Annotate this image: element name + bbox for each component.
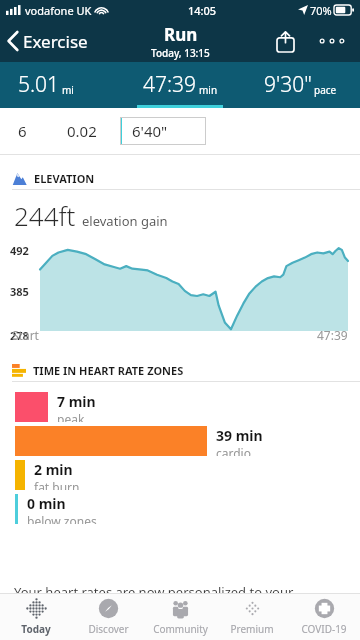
staticText: 6'40" [132, 121, 168, 141]
staticText: below zones [27, 513, 97, 524]
staticText: 5.01 [18, 70, 60, 99]
button[interactable]: Community [144, 594, 216, 640]
staticText: 7 min [57, 392, 96, 411]
staticText: TIME IN HEART RATE ZONES [33, 363, 184, 378]
button[interactable]: Premium [216, 594, 288, 640]
button[interactable]: Exercise [0, 20, 96, 62]
button[interactable]: 9'30" [240, 62, 360, 108]
staticText: Start [12, 327, 39, 343]
button[interactable]: Share [268, 24, 302, 58]
staticText: mi [62, 83, 74, 97]
staticText: Today, 13:15 [151, 46, 210, 60]
staticText: 47:39 [143, 70, 197, 99]
staticText: 0.02 [67, 121, 97, 141]
button[interactable]: 5.01 [0, 62, 120, 108]
staticText: 9'30" [264, 70, 312, 99]
staticText: 39 min [216, 426, 263, 445]
button[interactable]: 6'40" [120, 117, 206, 145]
staticText: Community [153, 622, 208, 636]
staticText: pace [314, 83, 337, 97]
staticText: Today [21, 622, 51, 636]
button[interactable]: More options [312, 21, 352, 61]
staticText: 244ft [14, 198, 76, 233]
staticText: Run [164, 23, 198, 46]
staticText: 70% [310, 3, 332, 18]
staticText: elevation gain [82, 212, 168, 230]
button[interactable]: 7 min [15, 392, 360, 422]
staticText: min [199, 83, 218, 97]
staticText: 14:05 [188, 3, 217, 18]
button[interactable]: 47:39 [120, 62, 240, 108]
staticText: Your heart rates are now personalized to… [14, 583, 294, 593]
staticText: 385 [10, 284, 29, 299]
staticText: 2 min [34, 460, 73, 479]
staticText: 492 [10, 243, 29, 258]
staticText: peak [57, 411, 85, 422]
staticText: 6 [18, 121, 27, 141]
button[interactable]: COVID-19 [288, 594, 360, 640]
staticText: cardio [216, 445, 251, 456]
staticText: Discover [88, 622, 129, 636]
staticText: 47:39 [317, 327, 348, 343]
staticText: Exercise [23, 30, 88, 53]
button[interactable]: 0 min [15, 494, 360, 524]
staticText: 278 [10, 328, 29, 343]
button[interactable]: 2 min [15, 460, 360, 490]
staticText: COVID-19 [301, 622, 347, 636]
staticText: vodafone UK [25, 3, 92, 18]
button[interactable]: Today [0, 594, 72, 640]
staticText: fat burn [34, 479, 80, 490]
staticText: ELEVATION [34, 171, 95, 186]
staticText: 0 min [27, 494, 66, 513]
staticText: Premium [230, 622, 274, 636]
button[interactable]: 39 min [15, 426, 360, 456]
button[interactable]: Discover [72, 594, 144, 640]
